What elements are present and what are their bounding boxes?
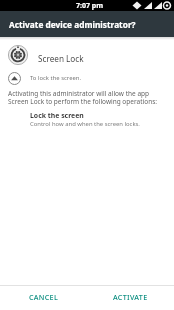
- staticText: Lock the screen: [30, 111, 84, 120]
- staticText: ACTIVATE: [113, 292, 148, 302]
- button[interactable]: ACTIVATE: [87, 284, 174, 310]
- staticText: CANCEL: [29, 292, 59, 302]
- button[interactable]: To lock the screen.: [8, 72, 81, 85]
- staticText: Screen Lock to perform the following ope…: [8, 97, 157, 106]
- staticText: Activating this administrator will allow…: [8, 89, 150, 98]
- button[interactable]: CANCEL: [0, 284, 87, 310]
- staticText: Screen Lock: [38, 53, 84, 64]
- staticText: 7:07 pm: [76, 1, 104, 11]
- staticText: Activate device administrator?: [9, 19, 136, 30]
- staticText: Control how and when the screen locks.: [30, 120, 140, 128]
- staticText: To lock the screen.: [30, 74, 81, 82]
